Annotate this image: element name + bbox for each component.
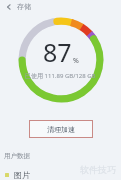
staticText: 87 <box>43 35 72 69</box>
staticText: 已使用 111.89 GB/128 GB <box>25 72 96 80</box>
staticText: 存储 <box>17 2 31 11</box>
button[interactable]: 清理加速 <box>30 121 92 137</box>
staticText: 软件技巧 <box>80 164 116 175</box>
staticText: 用户数据 <box>4 152 30 160</box>
staticText: 清理加速 <box>47 125 75 134</box>
button[interactable]: Back <box>3 1 14 12</box>
staticText: 图片 <box>14 170 30 180</box>
staticText: % <box>73 56 79 66</box>
button[interactable]: 图片 <box>0 169 121 180</box>
